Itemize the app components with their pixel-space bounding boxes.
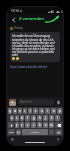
button[interactable]: r	[23, 108, 27, 114]
button[interactable]: u	[39, 108, 44, 114]
staticText: x	[21, 123, 23, 127]
staticText: v	[33, 123, 35, 127]
button[interactable]: f	[25, 115, 30, 121]
staticText: l	[57, 116, 58, 120]
button[interactable]: a	[10, 115, 14, 121]
button[interactable]: o	[51, 108, 56, 114]
button[interactable]: n	[43, 122, 48, 128]
staticText: g	[33, 116, 35, 120]
staticText: s	[16, 116, 18, 120]
staticText: w	[14, 109, 17, 113]
button[interactable]: Emoji	[16, 129, 21, 135]
other: Shift	[10, 124, 13, 127]
staticText: a	[11, 116, 13, 120]
staticText: n	[45, 123, 47, 127]
staticText: Ich wollte dir aus Überzeugung wünschen …	[12, 34, 58, 56]
button[interactable]: Attachment preview	[9, 99, 16, 106]
button[interactable]: w	[13, 108, 17, 114]
button[interactable]: k	[49, 115, 54, 121]
button[interactable]: e	[18, 108, 22, 114]
staticText: m	[50, 123, 53, 127]
button[interactable]: i	[45, 108, 50, 114]
staticText: d	[21, 116, 23, 120]
staticText: k	[51, 116, 53, 120]
button[interactable]: l	[55, 115, 60, 121]
button[interactable]: More options	[56, 100, 61, 105]
other: Backspace	[57, 124, 61, 127]
staticText: y	[16, 123, 18, 127]
staticText: p	[59, 109, 61, 113]
staticText: .	[51, 130, 52, 134]
button[interactable]: 2 versenden	[18, 15, 45, 23]
staticText: t	[30, 109, 31, 113]
staticText: e	[19, 109, 21, 113]
button[interactable]: p	[57, 108, 62, 114]
staticText: h	[39, 116, 41, 120]
other: Emoji	[17, 131, 20, 134]
button[interactable]: Voice input	[56, 137, 60, 141]
button[interactable]: Enter	[55, 129, 62, 135]
button[interactable]: t	[28, 108, 32, 114]
button[interactable]: v	[31, 122, 36, 128]
staticText: q	[9, 109, 11, 113]
staticText: u	[41, 109, 43, 113]
staticText: f	[27, 116, 28, 120]
button[interactable]: ?123	[8, 129, 15, 135]
button[interactable]: b	[37, 122, 42, 128]
other: Enter	[57, 131, 60, 134]
staticText: c	[27, 123, 29, 127]
button[interactable]: j	[43, 115, 48, 121]
button[interactable]: Backspace	[55, 122, 62, 128]
button[interactable]: Space	[22, 129, 48, 135]
button[interactable]: m	[49, 122, 54, 128]
staticText: Freitag	[14, 26, 23, 30]
staticText: 2 versenden	[19, 16, 44, 22]
button[interactable]: Nachricht	[18, 99, 54, 105]
button[interactable]: h	[37, 115, 42, 121]
button[interactable]: Keyboard settings	[10, 137, 14, 141]
button[interactable]: Shift	[8, 122, 14, 128]
staticText: r	[24, 109, 26, 113]
button[interactable]: d	[20, 115, 24, 121]
staticText: o	[53, 109, 55, 113]
button[interactable]: c	[25, 122, 30, 128]
staticText: Nachricht	[20, 100, 32, 104]
staticText: 10:14	[11, 9, 19, 13]
staticText: https://www.schneider-falk.de/anmeldung	[10, 65, 60, 69]
staticText: ?123	[9, 131, 14, 134]
button[interactable]: y	[15, 122, 19, 128]
button[interactable]: q	[8, 108, 12, 114]
button[interactable]: Back	[10, 16, 17, 23]
button[interactable]: g	[31, 115, 36, 121]
staticText: i	[47, 109, 48, 113]
button[interactable]: z	[33, 108, 38, 114]
staticText: j	[45, 116, 46, 120]
button[interactable]: Ich wollte dir aus Überzeugung wünschen …	[10, 32, 60, 62]
button[interactable]: .	[49, 129, 54, 135]
staticText: z	[35, 109, 37, 113]
button[interactable]: x	[20, 122, 24, 128]
button[interactable]: s	[15, 115, 19, 121]
staticText: Deutsch	[31, 131, 40, 134]
staticText: b	[39, 123, 41, 127]
